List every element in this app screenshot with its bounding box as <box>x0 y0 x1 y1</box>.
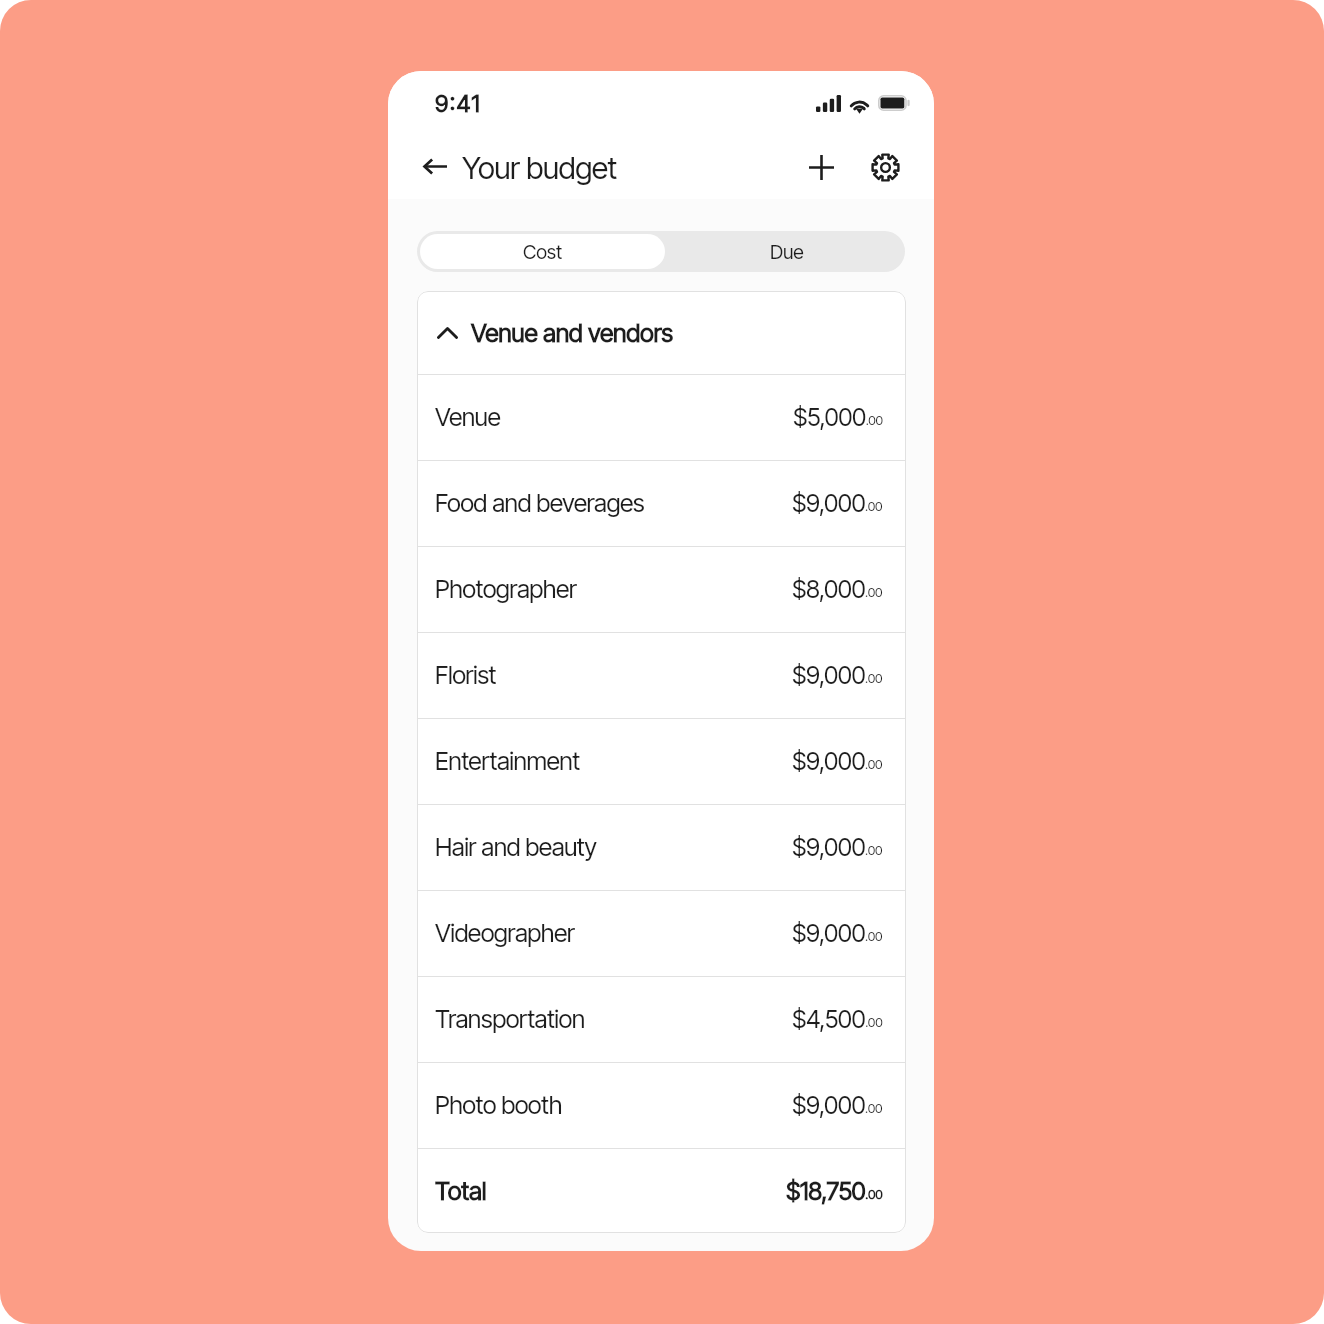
button[interactable]: Florist <box>417 632 906 718</box>
staticText: $9,000.00 <box>792 918 883 948</box>
button[interactable]: Food and beverages <box>417 460 906 546</box>
staticText: $9,000.00 <box>792 832 883 862</box>
button[interactable]: Venue <box>417 374 906 460</box>
staticText: $4,500.00 <box>792 1004 883 1034</box>
staticText: Photographer <box>435 574 577 604</box>
staticText: Venue <box>435 402 501 432</box>
staticText: Hair and beauty <box>435 832 597 862</box>
staticText: $8,000.00 <box>792 574 883 604</box>
staticText: $9,000.00 <box>792 1090 883 1120</box>
staticText: Your budget <box>462 149 617 186</box>
staticText: $9,000.00 <box>792 746 883 776</box>
staticText: $9,000.00 <box>792 488 883 518</box>
staticText: Florist <box>435 660 496 690</box>
button[interactable]: Videographer <box>417 890 906 976</box>
button[interactable]: Photographer <box>417 546 906 632</box>
staticText: Cost <box>523 240 563 264</box>
staticText: Photo booth <box>435 1090 562 1120</box>
staticText: Food and beverages <box>435 488 645 518</box>
staticText: Venue and vendors <box>471 318 673 348</box>
staticText: 9:41 <box>435 89 482 117</box>
staticText: $5,000.00 <box>793 402 883 432</box>
staticText: $9,000.00 <box>792 660 883 690</box>
button[interactable]: Transportation <box>417 976 906 1062</box>
button[interactable]: Hair and beauty <box>417 804 906 890</box>
button[interactable]: Photo booth <box>417 1062 906 1148</box>
staticText: Transportation <box>435 1004 585 1034</box>
staticText: Entertainment <box>435 746 580 776</box>
button[interactable]: Entertainment <box>417 718 906 804</box>
button[interactable]: Back <box>411 142 459 190</box>
staticText: $18,750.00 <box>786 1176 883 1206</box>
button[interactable]: Settings <box>861 143 909 191</box>
staticText: Videographer <box>435 918 575 948</box>
button[interactable]: Cost <box>420 234 665 269</box>
staticText: Total <box>435 1176 487 1206</box>
button[interactable]: Due <box>668 231 905 272</box>
button[interactable]: Venue and vendors <box>417 291 906 374</box>
button[interactable]: Add <box>797 143 845 191</box>
staticText: Due <box>770 240 804 264</box>
